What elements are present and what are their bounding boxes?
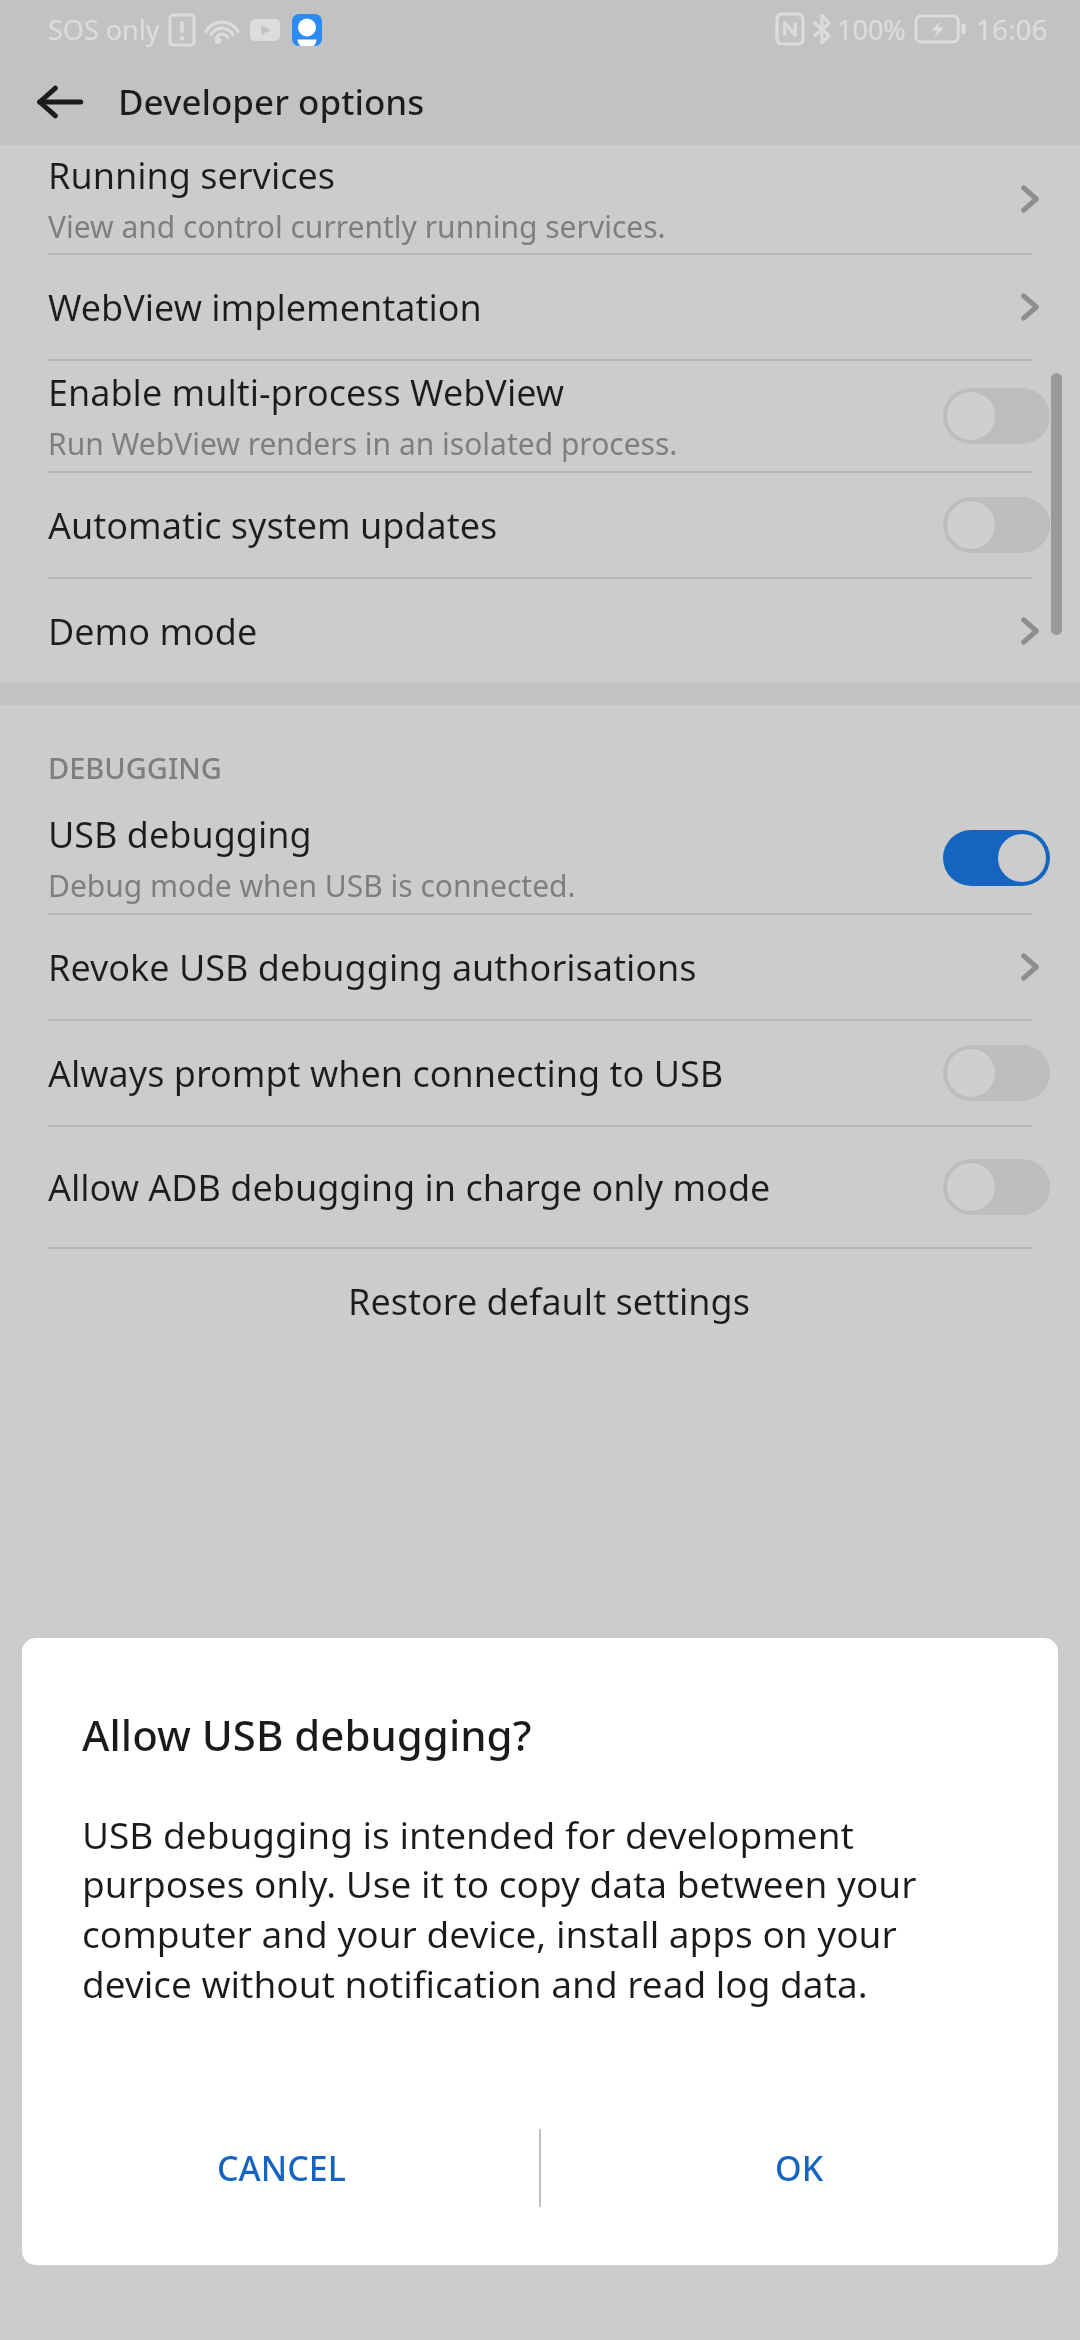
staticText: CANCEL xyxy=(217,2145,346,2191)
staticText: Developer options xyxy=(118,78,425,126)
staticText: WebView implementation xyxy=(48,283,482,332)
staticText: Running services xyxy=(48,151,335,200)
staticText: Enable multi-process WebView xyxy=(48,368,565,417)
button[interactable]: Restore default settings xyxy=(0,1249,1080,1353)
button[interactable]: CANCEL xyxy=(22,2093,540,2243)
staticText: Allow USB debugging? xyxy=(82,1706,532,1763)
staticText: Run WebView renders in an isolated proce… xyxy=(48,423,678,464)
button[interactable]: USB debugging xyxy=(0,803,1080,913)
staticText: 100% xyxy=(837,11,906,48)
staticText: Debug mode when USB is connected. xyxy=(48,865,576,906)
button[interactable]: Revoke USB debugging authorisations xyxy=(0,915,1080,1019)
button[interactable]: Demo mode xyxy=(0,579,1080,683)
button[interactable]: Allow ADB debugging in charge only mode xyxy=(0,1127,1080,1247)
button[interactable] xyxy=(943,1159,1050,1215)
staticText: Automatic system updates xyxy=(48,501,498,550)
button[interactable] xyxy=(943,497,1050,553)
staticText: Restore default settings xyxy=(348,1277,750,1326)
staticText: DEBUGGING xyxy=(48,748,222,787)
button[interactable]: Always prompt when connecting to USB xyxy=(0,1021,1080,1125)
button[interactable] xyxy=(943,830,1050,886)
button[interactable] xyxy=(943,388,1050,444)
button[interactable]: Running services xyxy=(0,145,1080,253)
staticText: USB debugging is intended for developmen… xyxy=(82,1809,1010,2009)
staticText: SOS only xyxy=(48,11,160,48)
staticText: View and control currently running servi… xyxy=(48,206,666,247)
button[interactable]: WebView implementation xyxy=(0,255,1080,359)
button[interactable] xyxy=(943,1045,1050,1101)
staticText: USB debugging xyxy=(48,810,312,859)
button[interactable]: Back xyxy=(22,64,98,140)
staticText: Allow ADB debugging in charge only mode xyxy=(48,1163,771,1212)
button[interactable]: Automatic system updates xyxy=(0,473,1080,577)
staticText: 16:06 xyxy=(976,10,1048,48)
button[interactable]: OK xyxy=(540,2093,1058,2243)
button[interactable]: Enable multi-process WebView xyxy=(0,361,1080,471)
staticText: Revoke USB debugging authorisations xyxy=(48,943,697,992)
staticText: Always prompt when connecting to USB xyxy=(48,1049,724,1098)
staticText: OK xyxy=(775,2145,824,2191)
staticText: Demo mode xyxy=(48,607,258,656)
